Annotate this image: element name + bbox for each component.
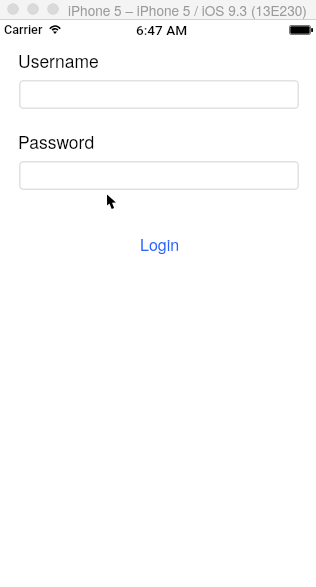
button[interactable]: Minimize xyxy=(27,3,39,15)
staticText: 6:47 AM xyxy=(136,22,188,38)
staticText: Username xyxy=(18,48,99,73)
staticText: Carrier xyxy=(4,22,43,37)
button[interactable]: Login xyxy=(2,233,316,255)
button[interactable]: Zoom xyxy=(47,3,59,15)
other: Wi-Fi xyxy=(49,25,61,34)
staticText: Password xyxy=(18,129,95,154)
button[interactable] xyxy=(19,80,299,109)
button[interactable]: Close xyxy=(7,3,19,15)
staticText: iPhone 5 – iPhone 5 / iOS 9.3 (13E230) xyxy=(68,0,307,19)
button[interactable] xyxy=(19,161,299,190)
staticText: Login xyxy=(140,233,180,255)
other: Battery full xyxy=(289,25,313,35)
